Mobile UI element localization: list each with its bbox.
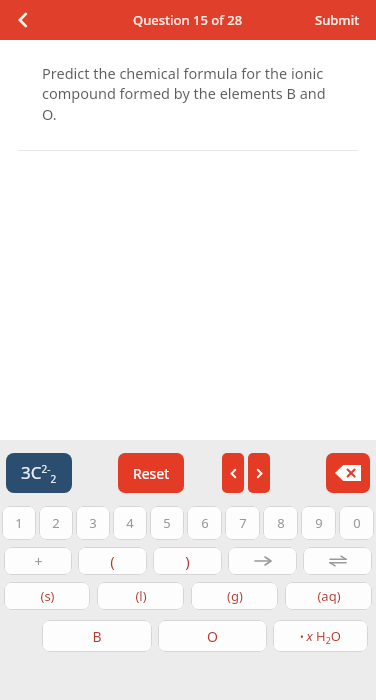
button[interactable]: Equilibrium arrows <box>303 547 372 575</box>
staticText: (l) <box>135 587 147 605</box>
button[interactable]: Move cursor left <box>222 453 244 493</box>
other: Equilibrium arrows <box>328 555 348 567</box>
staticText: B <box>92 627 102 646</box>
button[interactable]: (s) <box>4 582 90 610</box>
button[interactable]: 1 <box>2 506 36 540</box>
button[interactable]: 2 <box>39 506 73 540</box>
button[interactable]: (g) <box>191 582 278 610</box>
button[interactable]: 3C2-2 <box>6 453 72 493</box>
staticText: 3 <box>89 514 97 532</box>
staticText: ( <box>110 551 115 571</box>
button[interactable]: 7 <box>225 506 260 540</box>
button[interactable]: + <box>4 547 72 575</box>
button[interactable]: Move cursor right <box>248 453 270 493</box>
staticText: (g) <box>227 587 243 605</box>
staticText: 2 <box>52 514 60 532</box>
staticText: 4 <box>126 514 134 532</box>
staticText: Reset <box>133 464 170 483</box>
button[interactable]: Yields arrow <box>228 547 297 575</box>
staticText: ) <box>185 551 190 571</box>
button[interactable]: O <box>158 620 267 652</box>
staticText: 5 <box>163 514 171 532</box>
staticText: Question 15 of 28 <box>133 11 243 29</box>
button[interactable]: Reset <box>118 453 184 493</box>
button[interactable]: (aq) <box>285 582 372 610</box>
button[interactable]: 8 <box>263 506 298 540</box>
staticText: 6 <box>201 514 209 532</box>
button[interactable]: 9 <box>301 506 336 540</box>
staticText: • x H2O <box>300 627 341 646</box>
staticText: Predict the chemical formula for the ion… <box>42 63 331 125</box>
staticText: (aq) <box>317 587 341 605</box>
staticText: 9 <box>315 514 323 532</box>
button[interactable]: 4 <box>113 506 147 540</box>
button[interactable]: 0 <box>339 506 374 540</box>
button[interactable]: • x H2O <box>273 620 368 652</box>
button[interactable]: 3 <box>76 506 110 540</box>
button[interactable]: ) <box>153 547 222 575</box>
button[interactable]: 6 <box>187 506 222 540</box>
staticText: + <box>34 552 43 571</box>
button[interactable]: Backspace <box>326 453 370 493</box>
staticText: Submit <box>315 11 360 29</box>
staticText: O <box>207 627 218 646</box>
button[interactable]: ( <box>78 547 147 575</box>
staticText: 3C2-2 <box>21 461 57 486</box>
button[interactable]: (l) <box>97 582 184 610</box>
button[interactable]: 5 <box>150 506 184 540</box>
button[interactable]: Back <box>0 0 46 40</box>
other: Yields arrow <box>253 555 273 567</box>
staticText: 1 <box>15 514 23 532</box>
staticText: (s) <box>40 587 55 605</box>
button[interactable]: B <box>42 620 152 652</box>
staticText: 7 <box>239 514 247 532</box>
staticText: 0 <box>353 514 361 532</box>
button[interactable]: Submit <box>309 5 366 35</box>
staticText: 8 <box>277 514 285 532</box>
